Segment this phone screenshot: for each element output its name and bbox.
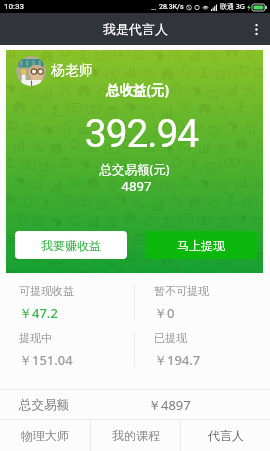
staticText: 28.3K/s: [159, 3, 184, 11]
staticText: 暂不可提现: [154, 284, 209, 298]
button[interactable]: 暂不可提现: [135, 279, 270, 326]
staticText: ￥47.2: [19, 304, 58, 322]
staticText: 代言人: [208, 428, 244, 443]
staticText: 我的课程: [112, 428, 160, 443]
staticText: 总交易额(元): [6, 161, 263, 178]
staticText: 联通 3G: [220, 2, 245, 12]
staticText: 总交易额: [19, 397, 69, 413]
staticText: 392.94: [13, 111, 270, 157]
button[interactable]: 总交易额: [0, 390, 270, 419]
button[interactable]: 我的课程: [91, 420, 180, 451]
staticText: 已提现: [154, 331, 187, 345]
staticText: 10:33: [4, 2, 24, 11]
staticText: …: [151, 3, 157, 12]
staticText: 可提现收益: [19, 284, 74, 298]
staticText: 总收益(元): [9, 81, 266, 99]
staticText: ￥194.7: [154, 351, 201, 369]
staticText: 物理大师: [21, 428, 69, 443]
staticText: ￥4897: [148, 396, 191, 414]
staticText: 马上提现: [177, 238, 225, 253]
staticText: ￥0: [154, 304, 175, 322]
staticText: 提现中: [19, 331, 52, 345]
button[interactable]: More options: [242, 15, 270, 43]
button[interactable]: 我要赚收益: [15, 231, 127, 259]
staticText: 4897: [8, 178, 265, 194]
button[interactable]: 已提现: [135, 326, 270, 373]
button[interactable]: 代言人: [181, 420, 270, 451]
button[interactable]: 物理大师: [0, 420, 90, 451]
staticText: 我要赚收益: [41, 238, 101, 253]
button[interactable]: 马上提现: [145, 231, 257, 259]
button[interactable]: 提现中: [0, 326, 134, 373]
staticText: ￥151.04: [19, 351, 73, 369]
staticText: 杨老师: [51, 62, 93, 80]
staticText: 我是代言人: [103, 21, 168, 37]
button[interactable]: 可提现收益: [0, 279, 134, 326]
